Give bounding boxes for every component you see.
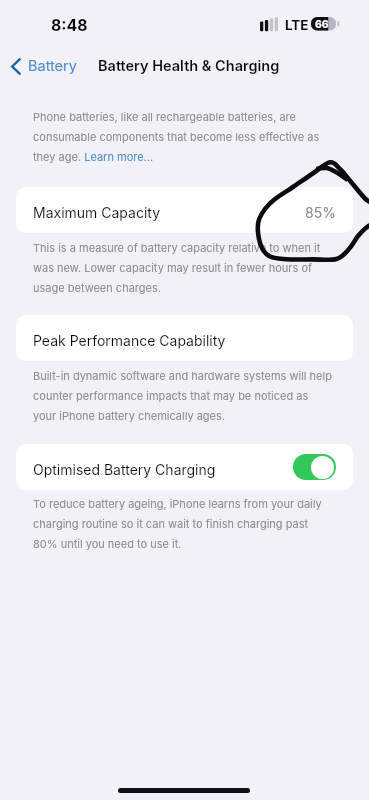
staticText: 66 (315, 18, 329, 31)
staticText: This is a measure of battery capacity re… (33, 241, 343, 295)
button[interactable]: Battery (8, 52, 81, 80)
staticText: Battery Health & Charging (98, 57, 280, 75)
button[interactable]: Optimised Battery Charging (16, 444, 353, 490)
staticText: 8:48 (51, 16, 88, 35)
staticText: Maximum Capacity (33, 204, 161, 221)
staticText: Battery (28, 57, 77, 75)
staticText: To reduce battery ageing, iPhone learns … (33, 497, 343, 551)
button[interactable]: Optimised Battery Charging, on (293, 454, 336, 480)
staticText: 85% (305, 204, 336, 221)
staticText: Built-in dynamic software and hardware s… (33, 369, 343, 423)
staticText: Peak Performance Capability (33, 332, 226, 349)
button[interactable]: Peak Performance Capability (16, 315, 353, 361)
staticText: LTE (285, 17, 309, 33)
staticText: Phone batteries, like all rechargeable b… (33, 110, 320, 164)
button[interactable]: Maximum Capacity (16, 187, 353, 233)
staticText: Optimised Battery Charging (33, 461, 216, 478)
